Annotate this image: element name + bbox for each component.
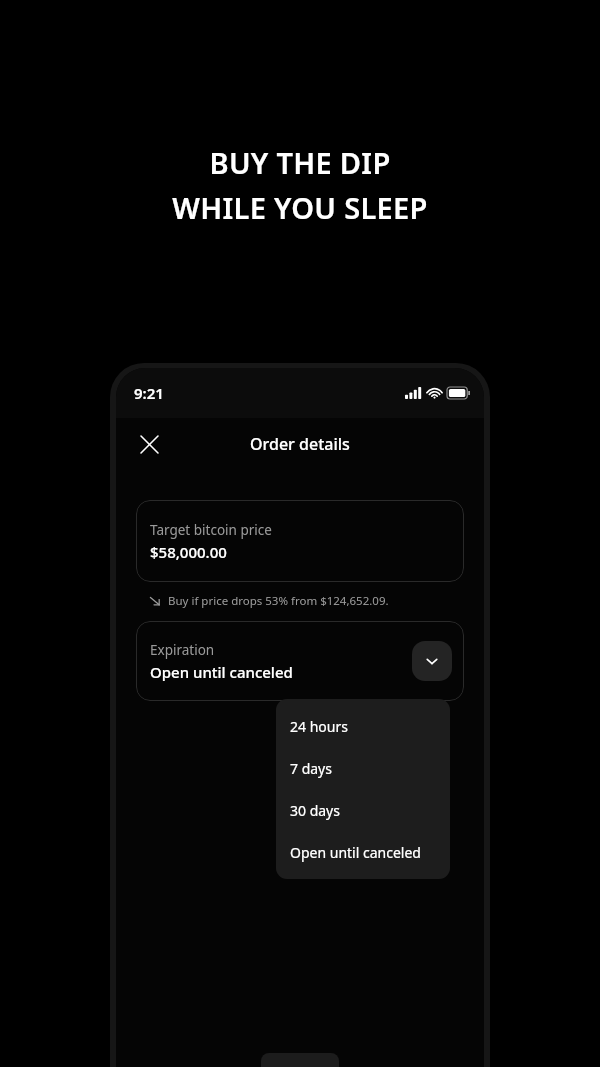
staticText: $58,000.00 — [150, 542, 227, 562]
staticText: 24 hours — [290, 717, 348, 736]
staticText: WHILE YOU SLEEP — [172, 188, 428, 227]
button[interactable]: Target bitcoin price — [136, 500, 464, 582]
button[interactable]: 24 hours — [276, 705, 450, 747]
button[interactable]: Expiration — [136, 621, 464, 701]
button[interactable]: 7 days — [276, 747, 450, 789]
staticText: Target bitcoin price — [150, 521, 272, 539]
button[interactable]: 30 days — [276, 789, 450, 831]
button[interactable]: Expand expiration options — [412, 641, 452, 681]
button[interactable]: Continue — [261, 1053, 339, 1067]
button[interactable]: Close — [132, 427, 166, 461]
staticText: Order details — [250, 433, 350, 455]
staticText: 7 days — [290, 759, 332, 778]
staticText: Open until canceled — [290, 843, 421, 862]
button[interactable]: Open until canceled — [276, 831, 450, 873]
staticText: 30 days — [290, 801, 340, 820]
staticText: 9:21 — [134, 383, 164, 403]
staticText: Expiration — [150, 641, 215, 659]
staticText: Buy if price drops 53% from $124,652.09. — [168, 593, 389, 609]
staticText: BUY THE DIP — [209, 143, 391, 182]
staticText: Open until canceled — [150, 662, 293, 682]
